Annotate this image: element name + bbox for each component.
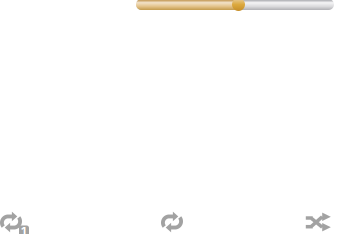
button[interactable]: Shuffle	[305, 211, 332, 233]
button[interactable]: Repeat One	[0, 211, 30, 234]
button[interactable]: Repeat	[161, 211, 183, 233]
staticText: 1	[20, 223, 27, 234]
